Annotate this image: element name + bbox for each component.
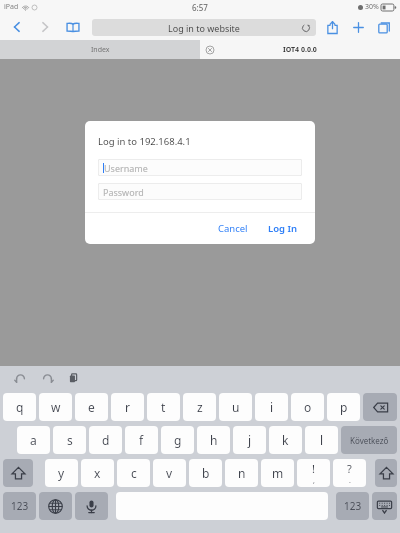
button[interactable]: New Tab	[351, 20, 366, 35]
button[interactable]: w	[39, 393, 72, 421]
button[interactable]: f	[125, 426, 158, 454]
button[interactable]: r	[111, 393, 144, 421]
button[interactable]: y	[45, 459, 78, 487]
staticText: q	[16, 399, 24, 415]
button[interactable]: i	[255, 393, 288, 421]
staticText: c	[131, 465, 137, 481]
button[interactable]: s	[53, 426, 86, 454]
button[interactable]: u	[219, 393, 252, 421]
button[interactable]: e	[75, 393, 108, 421]
button[interactable]: Következő	[341, 426, 397, 454]
staticText: p	[340, 399, 348, 415]
staticText: 6:57	[192, 2, 208, 13]
button[interactable]: j	[233, 426, 266, 454]
button[interactable]: Back	[8, 18, 26, 36]
button[interactable]: c	[117, 459, 150, 487]
staticText: e	[88, 399, 95, 415]
staticText: j	[248, 432, 252, 448]
staticText: 123	[344, 499, 362, 513]
button[interactable]: h	[197, 426, 230, 454]
staticText: l	[320, 432, 324, 448]
button[interactable]: Shift	[3, 459, 33, 487]
button[interactable]: x	[81, 459, 114, 487]
button[interactable]: 123	[336, 492, 369, 520]
button[interactable]: Cancel	[214, 220, 252, 237]
button[interactable]: q	[3, 393, 36, 421]
staticText: n	[238, 465, 246, 481]
staticText: o	[304, 399, 312, 415]
button[interactable]: t	[147, 393, 180, 421]
button[interactable]: Hide keyboard	[372, 492, 397, 520]
button[interactable]: Log In	[264, 220, 302, 237]
button[interactable]: o	[291, 393, 324, 421]
button[interactable]: Change keyboard	[39, 492, 72, 520]
staticText: i	[270, 399, 274, 415]
button[interactable]: Redo	[41, 372, 54, 385]
button[interactable]: b	[189, 459, 222, 487]
button[interactable]: Reload	[301, 23, 311, 33]
staticText: s	[67, 432, 73, 448]
staticText: ,	[313, 476, 315, 486]
button[interactable]: l	[305, 426, 338, 454]
staticText: a	[30, 432, 37, 448]
button[interactable]: Log in to website	[92, 19, 316, 36]
button[interactable]: v	[153, 459, 186, 487]
button[interactable]: a	[17, 426, 50, 454]
button[interactable]: 123	[3, 492, 36, 520]
staticText: z	[197, 399, 203, 415]
button[interactable]: Index	[0, 40, 200, 59]
button[interactable]: !	[297, 459, 330, 487]
staticText: b	[202, 465, 210, 481]
button[interactable]: z	[183, 393, 216, 421]
staticText: r	[125, 399, 130, 415]
staticText: Password	[103, 186, 144, 198]
staticText: Username	[104, 162, 148, 174]
staticText: f	[139, 432, 144, 448]
button[interactable]: Close tab	[206, 46, 214, 54]
staticText: IOT4 0.0.0	[283, 45, 317, 55]
button[interactable]: Shift	[375, 459, 397, 487]
staticText: 30%	[365, 2, 379, 12]
staticText: .	[349, 476, 351, 486]
button[interactable]: k	[269, 426, 302, 454]
button[interactable]: Backspace	[363, 393, 397, 421]
staticText: k	[282, 432, 289, 448]
staticText: iPad	[4, 2, 19, 12]
staticText: 123	[11, 499, 29, 513]
button[interactable]: n	[225, 459, 258, 487]
staticText: m	[272, 465, 284, 481]
staticText: ?	[347, 461, 352, 476]
button[interactable]: Share	[325, 20, 340, 35]
staticText: Következő	[350, 435, 389, 446]
staticText: h	[210, 432, 218, 448]
button[interactable]: d	[89, 426, 122, 454]
button[interactable]: Close tab	[200, 40, 400, 59]
button[interactable]: Undo	[14, 372, 27, 385]
button[interactable]: Forward	[36, 18, 54, 36]
button[interactable]: m	[261, 459, 294, 487]
staticText: v	[166, 465, 173, 481]
staticText: !	[312, 461, 315, 476]
staticText: u	[232, 399, 240, 415]
staticText: Index	[91, 45, 110, 55]
button[interactable]: ?	[333, 459, 366, 487]
button[interactable]: Show Tabs	[377, 20, 392, 35]
button[interactable]: Dictate	[75, 492, 108, 520]
staticText: Log In	[268, 222, 298, 235]
staticText: Log in to website	[168, 22, 240, 34]
staticText: y	[58, 465, 65, 481]
staticText: Log in to 192.168.4.1	[98, 135, 191, 148]
staticText: w	[51, 399, 61, 415]
button[interactable]: Paste	[68, 372, 80, 384]
button[interactable]: Password	[98, 183, 302, 200]
button[interactable]: p	[327, 393, 360, 421]
button[interactable]: Username	[98, 159, 302, 176]
staticText: x	[94, 465, 101, 481]
staticText: g	[174, 432, 182, 448]
button[interactable]: Bookmarks	[64, 18, 82, 36]
button[interactable]: g	[161, 426, 194, 454]
staticText: Cancel	[218, 222, 248, 235]
staticText: t	[161, 399, 166, 415]
staticText: d	[102, 432, 110, 448]
